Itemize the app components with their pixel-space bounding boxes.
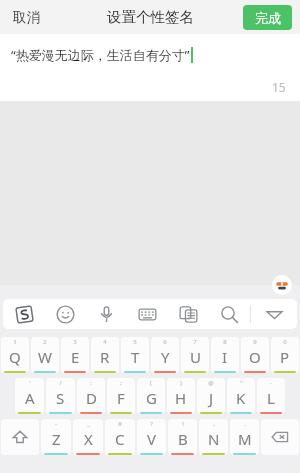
button[interactable]: ( (137, 378, 165, 414)
staticText: Y (161, 347, 170, 367)
button[interactable]: Keyboard (127, 299, 168, 329)
staticText: 5 (133, 338, 137, 346)
staticText: · (270, 379, 272, 387)
button[interactable]: Search (209, 299, 250, 329)
button[interactable]: Emoji (45, 299, 86, 329)
staticText: " (240, 379, 243, 387)
button[interactable]: Hide keyboard (251, 299, 297, 329)
staticText: 设置个性签名 (107, 8, 194, 26)
staticText: U (190, 347, 201, 367)
button[interactable]: ' (15, 378, 44, 414)
staticText: Q (9, 347, 21, 367)
staticText: 9 (253, 338, 257, 346)
button[interactable]: Voice input (86, 299, 127, 329)
button[interactable]: / (46, 378, 75, 414)
staticText: ; (120, 379, 122, 387)
staticText: Z (52, 429, 61, 449)
button[interactable]: Clipboard (168, 299, 209, 329)
staticText: 2 (43, 338, 47, 346)
button[interactable]: Sogou logo (3, 299, 45, 329)
button[interactable]: 9 (241, 337, 269, 373)
button[interactable]: 7 (181, 337, 209, 373)
button[interactable]: 2 (31, 337, 59, 373)
button[interactable]: : (77, 378, 105, 414)
staticText: S (56, 388, 65, 408)
button[interactable]: 0 (271, 337, 299, 373)
staticText: 取消 (13, 9, 40, 26)
staticText: G (146, 388, 157, 408)
staticText: 8 (223, 338, 227, 346)
staticText: C (115, 429, 125, 449)
staticText: P (280, 347, 290, 367)
staticText: W (38, 347, 52, 367)
button[interactable]: · (257, 378, 285, 414)
staticText: M (238, 429, 252, 449)
button[interactable]: 4 (91, 337, 119, 373)
button[interactable]: # (105, 419, 135, 455)
button[interactable]: 6 (151, 337, 179, 373)
button[interactable]: ) (167, 378, 195, 414)
staticText: D (86, 388, 97, 408)
staticText: # (118, 420, 122, 428)
staticText: F (117, 388, 125, 408)
button[interactable]: ? (137, 419, 166, 455)
staticText: 7 (193, 338, 197, 346)
staticText: “热爱漫无边际，生活自有分寸” (11, 46, 190, 64)
button[interactable]: ; (107, 378, 135, 414)
staticText: : (90, 379, 92, 387)
button[interactable]: 3 (61, 337, 89, 373)
staticText: I (222, 347, 228, 367)
button[interactable]: Backspace (261, 419, 299, 455)
staticText: X (84, 429, 93, 449)
staticText: A (25, 388, 35, 408)
button[interactable]: 8 (211, 337, 239, 373)
button[interactable]: ! (168, 419, 197, 455)
button[interactable]: , (199, 419, 228, 455)
staticText: E (71, 347, 80, 367)
button[interactable]: " (227, 378, 255, 414)
button[interactable]: 完成 (243, 5, 292, 30)
button[interactable]: @ (197, 378, 225, 414)
staticText: ? (150, 420, 153, 428)
staticText: B (178, 429, 188, 449)
staticText: L (267, 388, 275, 408)
staticText: R (100, 347, 110, 367)
button[interactable]: 1 (1, 337, 29, 373)
staticText: 4 (103, 338, 107, 346)
staticText: . (244, 420, 246, 428)
staticText: , (213, 420, 215, 428)
staticText: / (59, 379, 62, 387)
staticText: O (249, 347, 261, 367)
staticText: ) (180, 379, 182, 387)
button[interactable]: _ (73, 419, 103, 455)
button[interactable]: - (41, 419, 71, 455)
staticText: J (209, 388, 214, 408)
staticText: _ (87, 420, 90, 428)
staticText: 完成 (255, 10, 281, 26)
staticText: 3 (73, 338, 77, 346)
staticText: H (175, 388, 187, 408)
staticText: V (147, 429, 157, 449)
staticText: ! (182, 420, 184, 428)
staticText: - (55, 420, 57, 428)
staticText: T (131, 347, 140, 367)
button[interactable]: Sogou assistant (272, 275, 292, 295)
button[interactable]: Shift (1, 419, 39, 455)
staticText: 6 (163, 338, 167, 346)
staticText: ( (150, 379, 152, 387)
staticText: 15 (272, 79, 286, 95)
staticText: N (208, 429, 220, 449)
staticText: @ (208, 379, 214, 387)
staticText: 0 (283, 338, 287, 346)
staticText: K (236, 388, 246, 408)
button[interactable]: . (230, 419, 259, 455)
button[interactable]: 取消 (8, 4, 45, 31)
staticText: 1 (13, 338, 17, 346)
staticText: ' (29, 379, 31, 387)
button[interactable]: 5 (121, 337, 149, 373)
